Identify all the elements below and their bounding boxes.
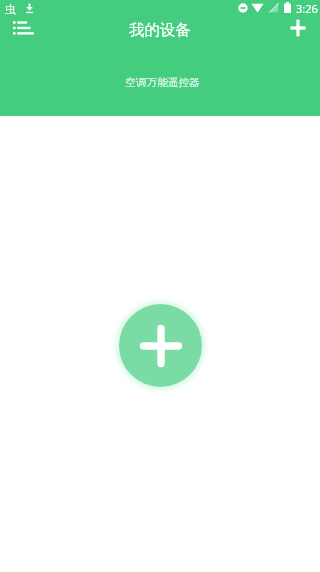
staticText: 空调万能遥控器 <box>125 76 200 89</box>
button[interactable]: Device list <box>7 11 40 44</box>
button[interactable]: Add device <box>119 304 202 387</box>
staticText: 我的设备 <box>0 20 320 40</box>
staticText: 3:26 <box>296 1 318 16</box>
staticText: 虫 <box>5 2 16 16</box>
button[interactable]: Add <box>281 11 314 44</box>
button[interactable]: 空调万能遥控器 <box>0 62 320 102</box>
